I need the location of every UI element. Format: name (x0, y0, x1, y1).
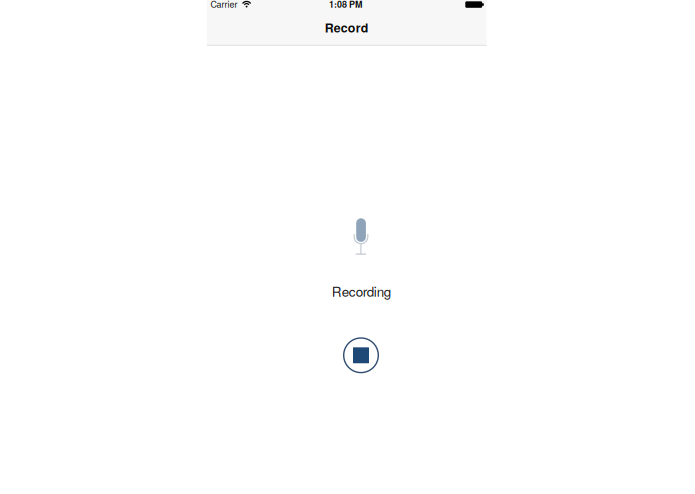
staticText: 1:08 PM (329, 0, 362, 11)
button[interactable]: Stop recording (341, 335, 381, 375)
staticText: Record (325, 19, 369, 36)
staticText: Recording (332, 281, 391, 301)
staticText: Carrier (210, 0, 237, 10)
